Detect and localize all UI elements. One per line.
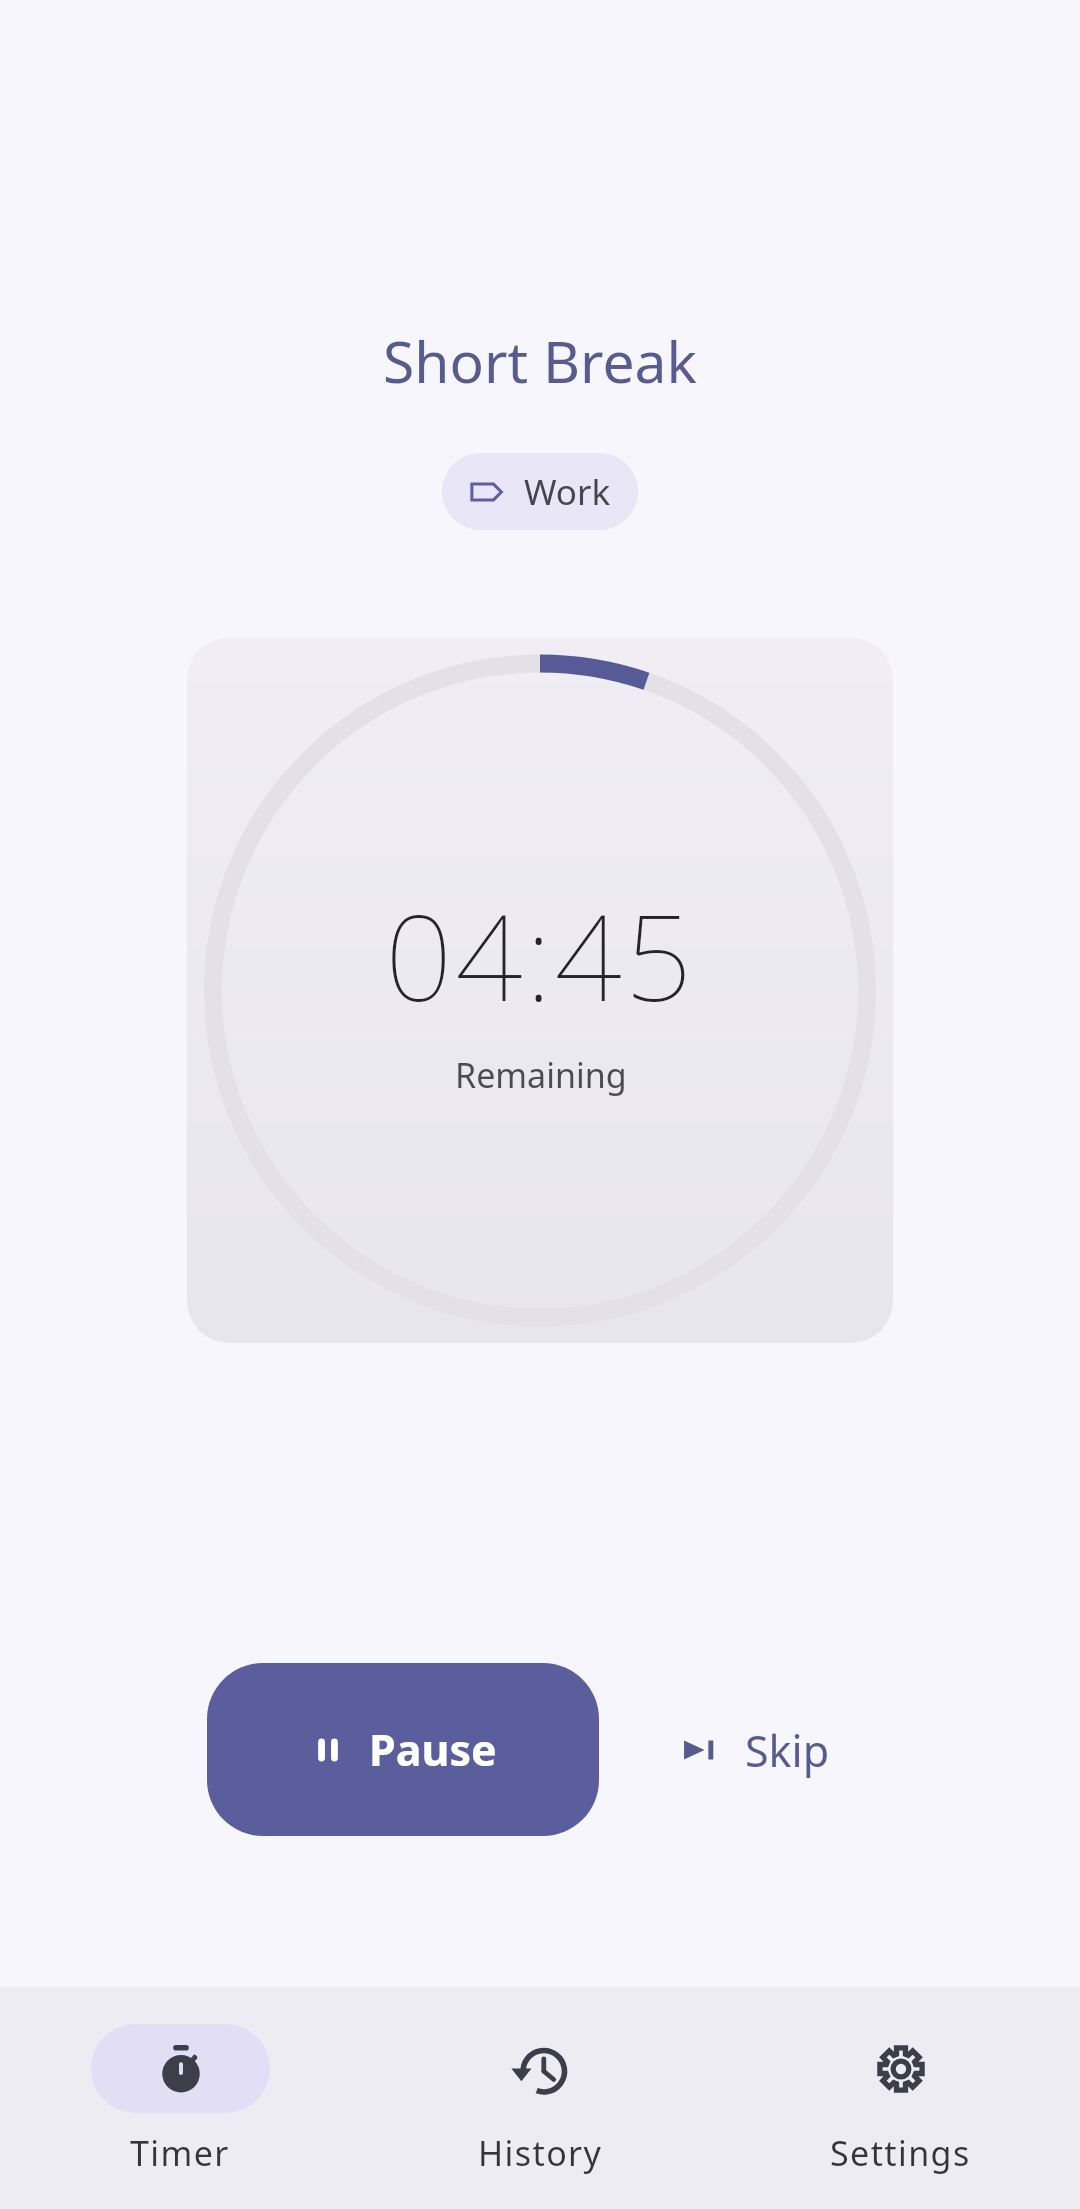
other: History xyxy=(513,2041,569,2097)
staticText: History xyxy=(478,2130,603,2176)
staticText: Skip xyxy=(745,1721,830,1780)
button[interactable]: Timer xyxy=(0,1987,360,2209)
staticText: Settings xyxy=(830,2130,971,2176)
staticText: Timer xyxy=(130,2130,230,2176)
staticText: 04:45 xyxy=(385,875,696,1036)
staticText: Remaining xyxy=(455,1052,627,1098)
other: Settings xyxy=(873,2041,929,2097)
button[interactable]: History xyxy=(360,1987,720,2209)
other: Timer xyxy=(153,2041,209,2097)
staticText: Short Break xyxy=(0,322,1080,400)
button[interactable]: Skip xyxy=(665,1695,846,1805)
button[interactable]: Pause xyxy=(207,1663,599,1836)
button[interactable]: Work xyxy=(442,453,638,530)
staticText: Work xyxy=(524,468,611,516)
staticText: Pause xyxy=(369,1720,497,1779)
button[interactable]: Settings xyxy=(720,1987,1080,2209)
